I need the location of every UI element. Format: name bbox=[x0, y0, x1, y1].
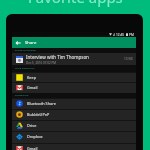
staticText: 12:45 bbox=[116, 33, 125, 37]
button[interactable]: Dropbox bbox=[12, 131, 136, 142]
button[interactable]: Interview with Tim Thompson bbox=[12, 53, 136, 65]
staticText: PM bbox=[129, 33, 134, 37]
staticText: Drive bbox=[27, 123, 37, 128]
staticText: SHARE TO CHROME bbox=[15, 49, 36, 52]
button[interactable]: Drive bbox=[12, 120, 136, 131]
staticText: Dropbox bbox=[27, 134, 43, 139]
button[interactable]: Bluetooth Share bbox=[12, 98, 136, 109]
staticText: SHARE WITH bbox=[15, 94, 29, 97]
staticText: Favorite apps bbox=[28, 0, 123, 7]
staticText: Bluetooth Share bbox=[27, 101, 56, 106]
button[interactable]: Back bbox=[12, 37, 136, 48]
staticText: Keep bbox=[27, 75, 36, 80]
button[interactable]: Gmail bbox=[12, 82, 136, 93]
button[interactable]: Keep bbox=[12, 72, 136, 83]
button[interactable]: BubbleUPnP bbox=[12, 109, 136, 120]
staticText: BubbleUPnP bbox=[27, 112, 50, 117]
staticText: 13 KB bbox=[124, 57, 133, 61]
staticText: Gmail bbox=[27, 146, 38, 150]
staticText: Dec 5, 2016 07:02 PM bbox=[26, 61, 57, 65]
staticText: Interview with Tim Thompson bbox=[26, 54, 89, 60]
staticText: Share bbox=[25, 40, 37, 46]
other: Back bbox=[15, 40, 21, 46]
button[interactable]: Gmail bbox=[12, 143, 136, 150]
staticText: YOUR SHORTCUTS bbox=[15, 67, 35, 70]
staticText: Gmail bbox=[27, 85, 38, 90]
